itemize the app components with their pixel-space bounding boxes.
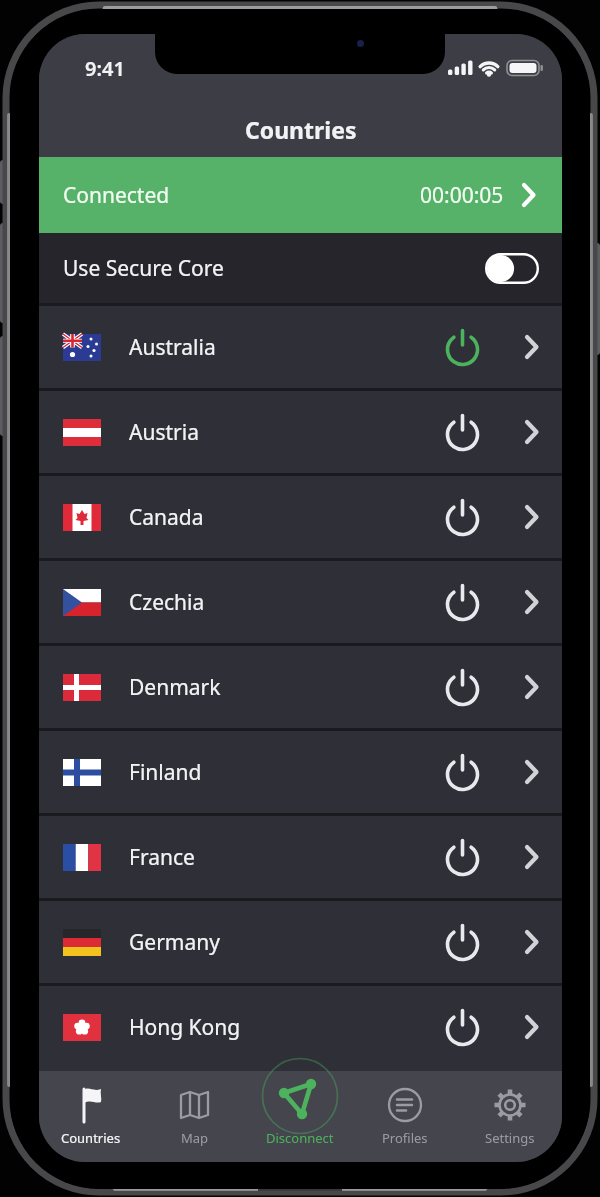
button[interactable]: Profiles: [352, 1071, 457, 1162]
staticText: Connected: [63, 181, 170, 210]
staticText: Germany: [129, 928, 220, 957]
staticText: Hong Kong: [129, 1013, 241, 1042]
staticText: Denmark: [129, 673, 221, 702]
staticText: Austria: [129, 418, 199, 447]
staticText: Use Secure Core: [63, 254, 224, 283]
staticText: 00:00:05: [420, 181, 504, 210]
button[interactable]: Germany: [39, 901, 562, 983]
button[interactable]: Finland: [39, 731, 562, 813]
staticText: Czechia: [129, 588, 205, 617]
button[interactable]: Connected: [39, 157, 562, 233]
staticText: 9:41: [85, 55, 125, 82]
button[interactable]: Hong Kong: [39, 986, 562, 1068]
staticText: Map: [181, 1129, 209, 1147]
button[interactable]: Map: [143, 1071, 247, 1162]
staticText: Countries: [61, 1129, 121, 1147]
button[interactable]: Denmark: [39, 646, 562, 728]
staticText: Settings: [485, 1129, 535, 1147]
button[interactable]: France: [39, 816, 562, 898]
button[interactable]: Austria: [39, 391, 562, 473]
staticText: Finland: [129, 758, 202, 787]
staticText: Profiles: [382, 1129, 428, 1147]
button[interactable]: Canada: [39, 476, 562, 558]
button[interactable]: Use Secure Core: [39, 233, 562, 303]
staticText: Countries: [245, 114, 357, 145]
button[interactable]: Czechia: [39, 561, 562, 643]
button[interactable]: Disconnect: [247, 1071, 352, 1162]
staticText: Canada: [129, 503, 204, 532]
staticText: Disconnect: [266, 1129, 334, 1147]
staticText: Australia: [129, 333, 216, 362]
button[interactable]: Australia: [39, 306, 562, 388]
button[interactable]: Countries: [39, 1071, 143, 1162]
staticText: France: [129, 843, 195, 872]
button[interactable]: Settings: [457, 1071, 562, 1162]
